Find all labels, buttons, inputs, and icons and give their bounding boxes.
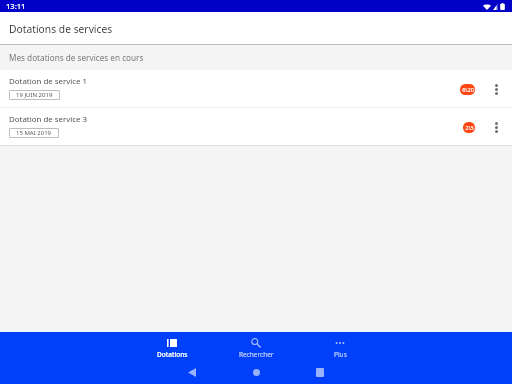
staticText: Mes dotations de services en cours <box>9 52 144 63</box>
staticText: Dotations de services <box>9 22 113 36</box>
staticText: Dotation de service 1 <box>9 76 88 87</box>
button[interactable]: Dotations <box>130 332 214 361</box>
button[interactable]: Home <box>224 361 288 384</box>
button[interactable]: Rechercher <box>214 332 298 361</box>
staticText: 19 JUIN 2019 <box>16 91 53 99</box>
staticText: Rechercher <box>239 350 274 359</box>
button[interactable]: Dotation de service 3 <box>0 108 512 146</box>
staticText: Dotations <box>157 350 188 359</box>
button[interactable]: Dotation de service 1 <box>0 70 512 108</box>
button[interactable]: More options <box>480 70 512 107</box>
button[interactable]: Back <box>160 361 224 384</box>
staticText: 15 MAI 2019 <box>16 129 52 137</box>
button[interactable]: Recents <box>288 361 352 384</box>
button[interactable]: More options <box>480 108 512 145</box>
button[interactable]: Plus <box>298 332 382 361</box>
staticText: Dotation de service 3 <box>9 114 88 125</box>
staticText: 13:11 <box>6 1 26 11</box>
staticText: 2\5 <box>465 124 474 132</box>
staticText: Plus <box>334 350 347 359</box>
staticText: 6\20 <box>462 86 474 94</box>
